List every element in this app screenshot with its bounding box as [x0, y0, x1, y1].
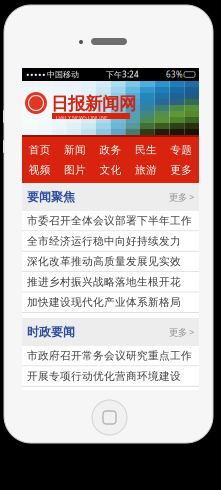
staticText: 要闻聚焦 [27, 190, 75, 204]
button[interactable]: 文化 [93, 163, 128, 177]
staticText: 市政府召开常务会议研究重点工作 [27, 349, 192, 362]
button[interactable]: 开展专项行动优化营商环境建设 [22, 366, 199, 387]
staticText: ••••• [26, 68, 46, 81]
button[interactable]: 全市经济运行稳中向好持续发力 [22, 231, 199, 252]
staticText: 深化改革推动高质量发展见实效 [27, 255, 181, 268]
button[interactable]: 专题 [164, 143, 199, 157]
staticText: 中国移动 [47, 70, 79, 79]
button[interactable]: 民生 [128, 143, 164, 157]
staticText: 加快建设现代化产业体系新格局 [27, 296, 181, 309]
staticText: 新闻 [64, 143, 86, 156]
button[interactable]: 新闻 [57, 143, 93, 157]
staticText: 市委召开全体会议部署下半年工作 [27, 214, 192, 227]
button[interactable]: 首页 [22, 143, 57, 157]
staticText: 全市经济运行稳中向好持续发力 [27, 234, 181, 248]
staticText: 文化 [99, 163, 121, 176]
button[interactable]: 加快建设现代化产业体系新格局 [22, 293, 199, 313]
button[interactable]: 要闻聚焦 [22, 183, 199, 211]
staticText: 开展专项行动优化营商环境建设 [27, 369, 181, 383]
staticText: 民生 [135, 143, 157, 156]
button[interactable]: 市政府召开常务会议研究重点工作 [22, 346, 199, 366]
staticText: 政务 [99, 143, 121, 156]
staticText: 时政要闻 [27, 325, 75, 339]
staticText: 更多 > [169, 326, 194, 338]
staticText: 推进乡村振兴战略落地生根开花 [27, 275, 181, 288]
button[interactable]: 旅游 [128, 163, 164, 177]
button[interactable]: 深化改革推动高质量发展见实效 [22, 252, 199, 272]
button[interactable]: 图片 [57, 163, 93, 177]
button[interactable]: 推进乡村振兴战略落地生根开花 [22, 272, 199, 293]
staticText: 更多 > [169, 191, 194, 203]
staticText: 专题 [170, 143, 192, 156]
staticText: 日报新闻网 [51, 93, 136, 114]
staticText: 图片 [64, 163, 86, 176]
staticText: DAILY NEWS ONLINE [56, 114, 108, 121]
button[interactable]: 视频 [22, 163, 57, 177]
button[interactable]: 市委召开全体会议部署下半年工作 [22, 211, 199, 231]
button[interactable]: 政务 [93, 143, 128, 157]
staticText: 下午3:24 [106, 69, 139, 80]
staticText: 视频 [29, 163, 51, 176]
button[interactable]: 时政要闻 [22, 318, 199, 346]
staticText: 更多 [170, 163, 192, 176]
button[interactable]: 更多 [164, 163, 199, 177]
staticText: 63% [166, 69, 183, 80]
staticText: 首页 [29, 143, 51, 156]
staticText: 旅游 [135, 163, 157, 176]
